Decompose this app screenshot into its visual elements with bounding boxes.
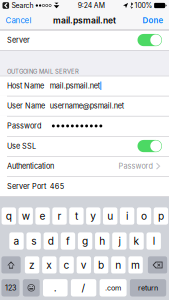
staticText: p [158,210,164,222]
button[interactable]: m [128,256,143,274]
staticText: Authentication [7,162,54,171]
button[interactable]: Use SSL [0,136,169,156]
staticText: d [48,235,54,247]
button[interactable]: 123 [1,279,19,296]
button[interactable]: x [42,256,56,274]
staticText: 9:24 AM [78,1,105,10]
staticText: e [40,210,46,222]
staticText: n [115,259,121,271]
staticText: c [64,259,70,271]
staticText: mail.psmail.net [53,15,116,26]
staticText: return [138,283,158,292]
staticText: j [118,235,120,247]
staticText: 100% [135,1,153,10]
staticText: .com [105,283,121,292]
button[interactable]: Shift [1,256,21,274]
staticText: OUTGOING MAIL SERVER [7,68,79,75]
staticText: Password [7,121,41,130]
staticText: Cancel [5,16,31,25]
staticText: z [29,259,35,271]
button[interactable]: a [9,232,24,250]
staticText: r [57,210,61,222]
staticText: 465 [50,182,64,191]
button[interactable]: l [146,232,161,250]
staticText: Use SSL [7,142,36,150]
staticText: m [131,259,140,271]
staticText: Search [9,1,33,10]
button[interactable]: k [129,232,144,250]
button[interactable]: Done [137,11,169,30]
staticText: Done [142,16,163,25]
staticText: v [81,259,87,271]
staticText: i [126,210,128,222]
staticText: w [22,210,30,222]
button[interactable]: e [35,207,50,225]
button[interactable]: Authentication [0,156,169,176]
staticText: 123 [5,283,16,292]
button[interactable]: User Name [0,96,169,116]
button[interactable]: Cancel [0,11,36,30]
staticText: Server Port [7,182,46,191]
button[interactable]: i [120,207,134,225]
button[interactable]: return [130,279,166,296]
staticText: o [141,210,147,222]
staticText: . [54,282,57,294]
staticText: a [13,235,19,247]
button[interactable]: q [2,207,16,225]
button[interactable]: Host Name [0,76,169,96]
staticText: User Name [7,101,45,110]
staticText: k [134,235,140,247]
staticText: t [75,210,78,222]
staticText: s [31,235,36,247]
button[interactable]: s [26,232,41,250]
staticText: / [82,282,86,294]
button[interactable]: Password [0,116,169,136]
button[interactable]: b [94,256,108,274]
button[interactable]: n [111,256,126,274]
button[interactable]: r [52,207,67,225]
button[interactable]: z [25,256,39,274]
button[interactable]: t [69,207,84,225]
button[interactable]: p [154,207,168,225]
staticText: u [107,210,113,222]
button[interactable]: / [71,279,96,296]
button[interactable]: h [95,232,109,250]
button[interactable]: y [86,207,100,225]
button[interactable]: w [18,207,33,225]
button[interactable]: . [43,279,68,296]
staticText: b [98,259,104,271]
button[interactable]: j [112,232,127,250]
staticText: g [82,235,88,247]
staticText: Host Name [7,81,44,90]
button[interactable]: Delete [148,256,167,274]
button[interactable]: Emoji [23,279,40,296]
staticText: mail.psmail.net [50,81,100,90]
button[interactable]: g [78,232,92,250]
button[interactable]: Server [0,30,169,50]
button[interactable]: .com [100,279,127,296]
button[interactable]: f [61,232,75,250]
staticText: x [46,259,52,271]
staticText: username@psmail.net [50,101,124,110]
button[interactable]: v [77,256,91,274]
button[interactable]: c [59,256,74,274]
button[interactable]: d [44,232,58,250]
button[interactable]: Server Port [0,176,169,196]
staticText: Server [7,36,30,44]
staticText: h [99,235,105,247]
button[interactable]: o [137,207,151,225]
staticText: y [90,210,96,222]
staticText: f [66,235,70,247]
staticText: Password [118,162,152,171]
staticText: q [6,210,12,222]
staticText: l [153,235,155,247]
button[interactable]: u [103,207,117,225]
